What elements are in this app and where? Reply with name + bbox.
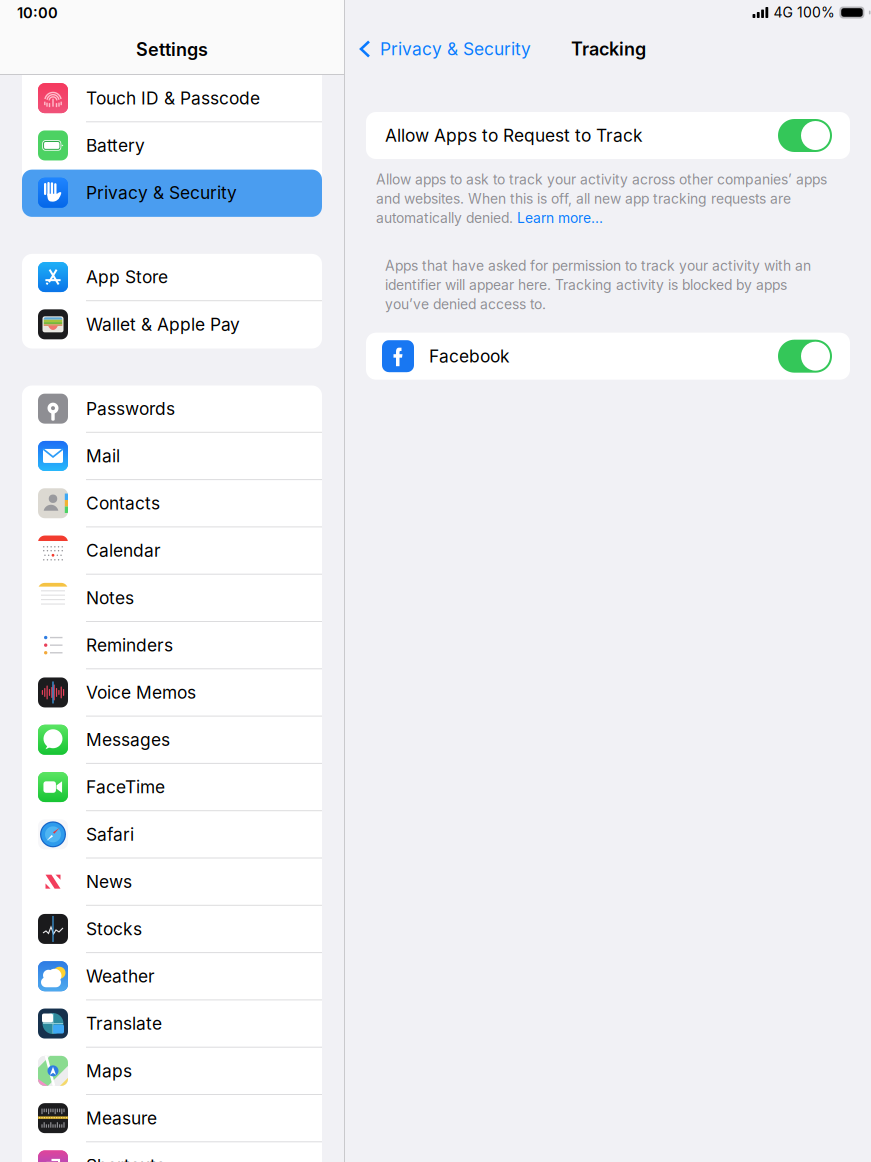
staticText: 10:00 <box>17 4 58 22</box>
staticText: Calendar <box>86 540 161 561</box>
button[interactable]: Voice Memos <box>22 669 322 717</box>
staticText: Facebook <box>429 346 510 367</box>
button[interactable]: Privacy & Security <box>345 26 537 72</box>
staticText: Allow apps to ask to track your activity… <box>376 171 827 188</box>
staticText: Messages <box>86 729 170 750</box>
button[interactable]: Allow Apps to Request to Track, on <box>778 119 832 152</box>
button[interactable]: Allow Apps to Request to Track <box>366 112 850 159</box>
staticText: Touch ID & Passcode <box>86 88 260 109</box>
button[interactable]: Privacy & Security <box>22 170 322 217</box>
button[interactable]: Stocks <box>22 906 322 953</box>
staticText: Stocks <box>86 918 142 939</box>
button[interactable]: Passwords <box>22 385 322 433</box>
button[interactable]: Weather <box>22 953 322 1000</box>
button[interactable]: Battery <box>22 122 322 170</box>
staticText: automatically denied. <box>376 210 517 226</box>
staticText: Mail <box>86 445 120 466</box>
staticText: Weather <box>86 966 155 987</box>
button[interactable]: Facebook tracking, on <box>778 340 832 373</box>
staticText: Measure <box>86 1108 157 1129</box>
button[interactable]: Reminders <box>22 622 322 669</box>
staticText: 4G <box>773 4 792 21</box>
button[interactable]: Notes <box>22 575 322 622</box>
staticText: Settings <box>136 39 208 60</box>
button[interactable]: Translate <box>22 1000 322 1048</box>
staticText: and websites. When this is off, all new … <box>376 190 791 207</box>
staticText: Learn more... <box>517 210 603 226</box>
staticText: Battery <box>86 135 145 156</box>
staticText: FaceTime <box>86 777 165 798</box>
staticText: identifier will appear here. Tracking ac… <box>385 277 787 293</box>
staticText: Wallet & Apple Pay <box>86 314 240 335</box>
button[interactable]: Contacts <box>22 480 322 527</box>
button[interactable]: Safari <box>22 811 322 858</box>
button[interactable]: Mail <box>22 433 322 480</box>
button[interactable]: Touch ID & Passcode <box>22 75 322 122</box>
button[interactable]: Shortcuts <box>22 1142 322 1162</box>
staticText: News <box>86 871 132 892</box>
button[interactable]: News <box>22 858 322 906</box>
button[interactable]: Messages <box>22 717 322 764</box>
staticText: Allow Apps to Request to Track <box>385 125 643 146</box>
staticText: Tracking <box>571 38 646 60</box>
staticText: Reminders <box>86 635 173 656</box>
button[interactable]: Learn more... <box>517 210 603 226</box>
staticText: 100% <box>797 4 835 21</box>
button[interactable]: FaceTime <box>22 764 322 811</box>
staticText: App Store <box>86 267 168 288</box>
button[interactable]: Maps <box>22 1048 322 1095</box>
staticText: Privacy & Security <box>86 182 237 203</box>
staticText: Shortcuts <box>86 1155 165 1162</box>
button[interactable]: Wallet & Apple Pay <box>22 301 322 348</box>
staticText: Voice Memos <box>86 682 196 703</box>
button[interactable]: Calendar <box>22 527 322 575</box>
staticText: Privacy & Security <box>380 38 531 59</box>
button[interactable]: App Store <box>22 254 322 301</box>
staticText: Notes <box>86 587 134 608</box>
button[interactable]: Measure <box>22 1095 322 1142</box>
staticText: Apps that have asked for permission to t… <box>385 257 811 274</box>
staticText: Translate <box>86 1013 162 1034</box>
staticText: you’ve denied access to. <box>385 296 546 313</box>
staticText: Passwords <box>86 398 175 419</box>
staticText: Contacts <box>86 493 160 514</box>
staticText: Maps <box>86 1060 132 1081</box>
staticText: Safari <box>86 824 134 845</box>
